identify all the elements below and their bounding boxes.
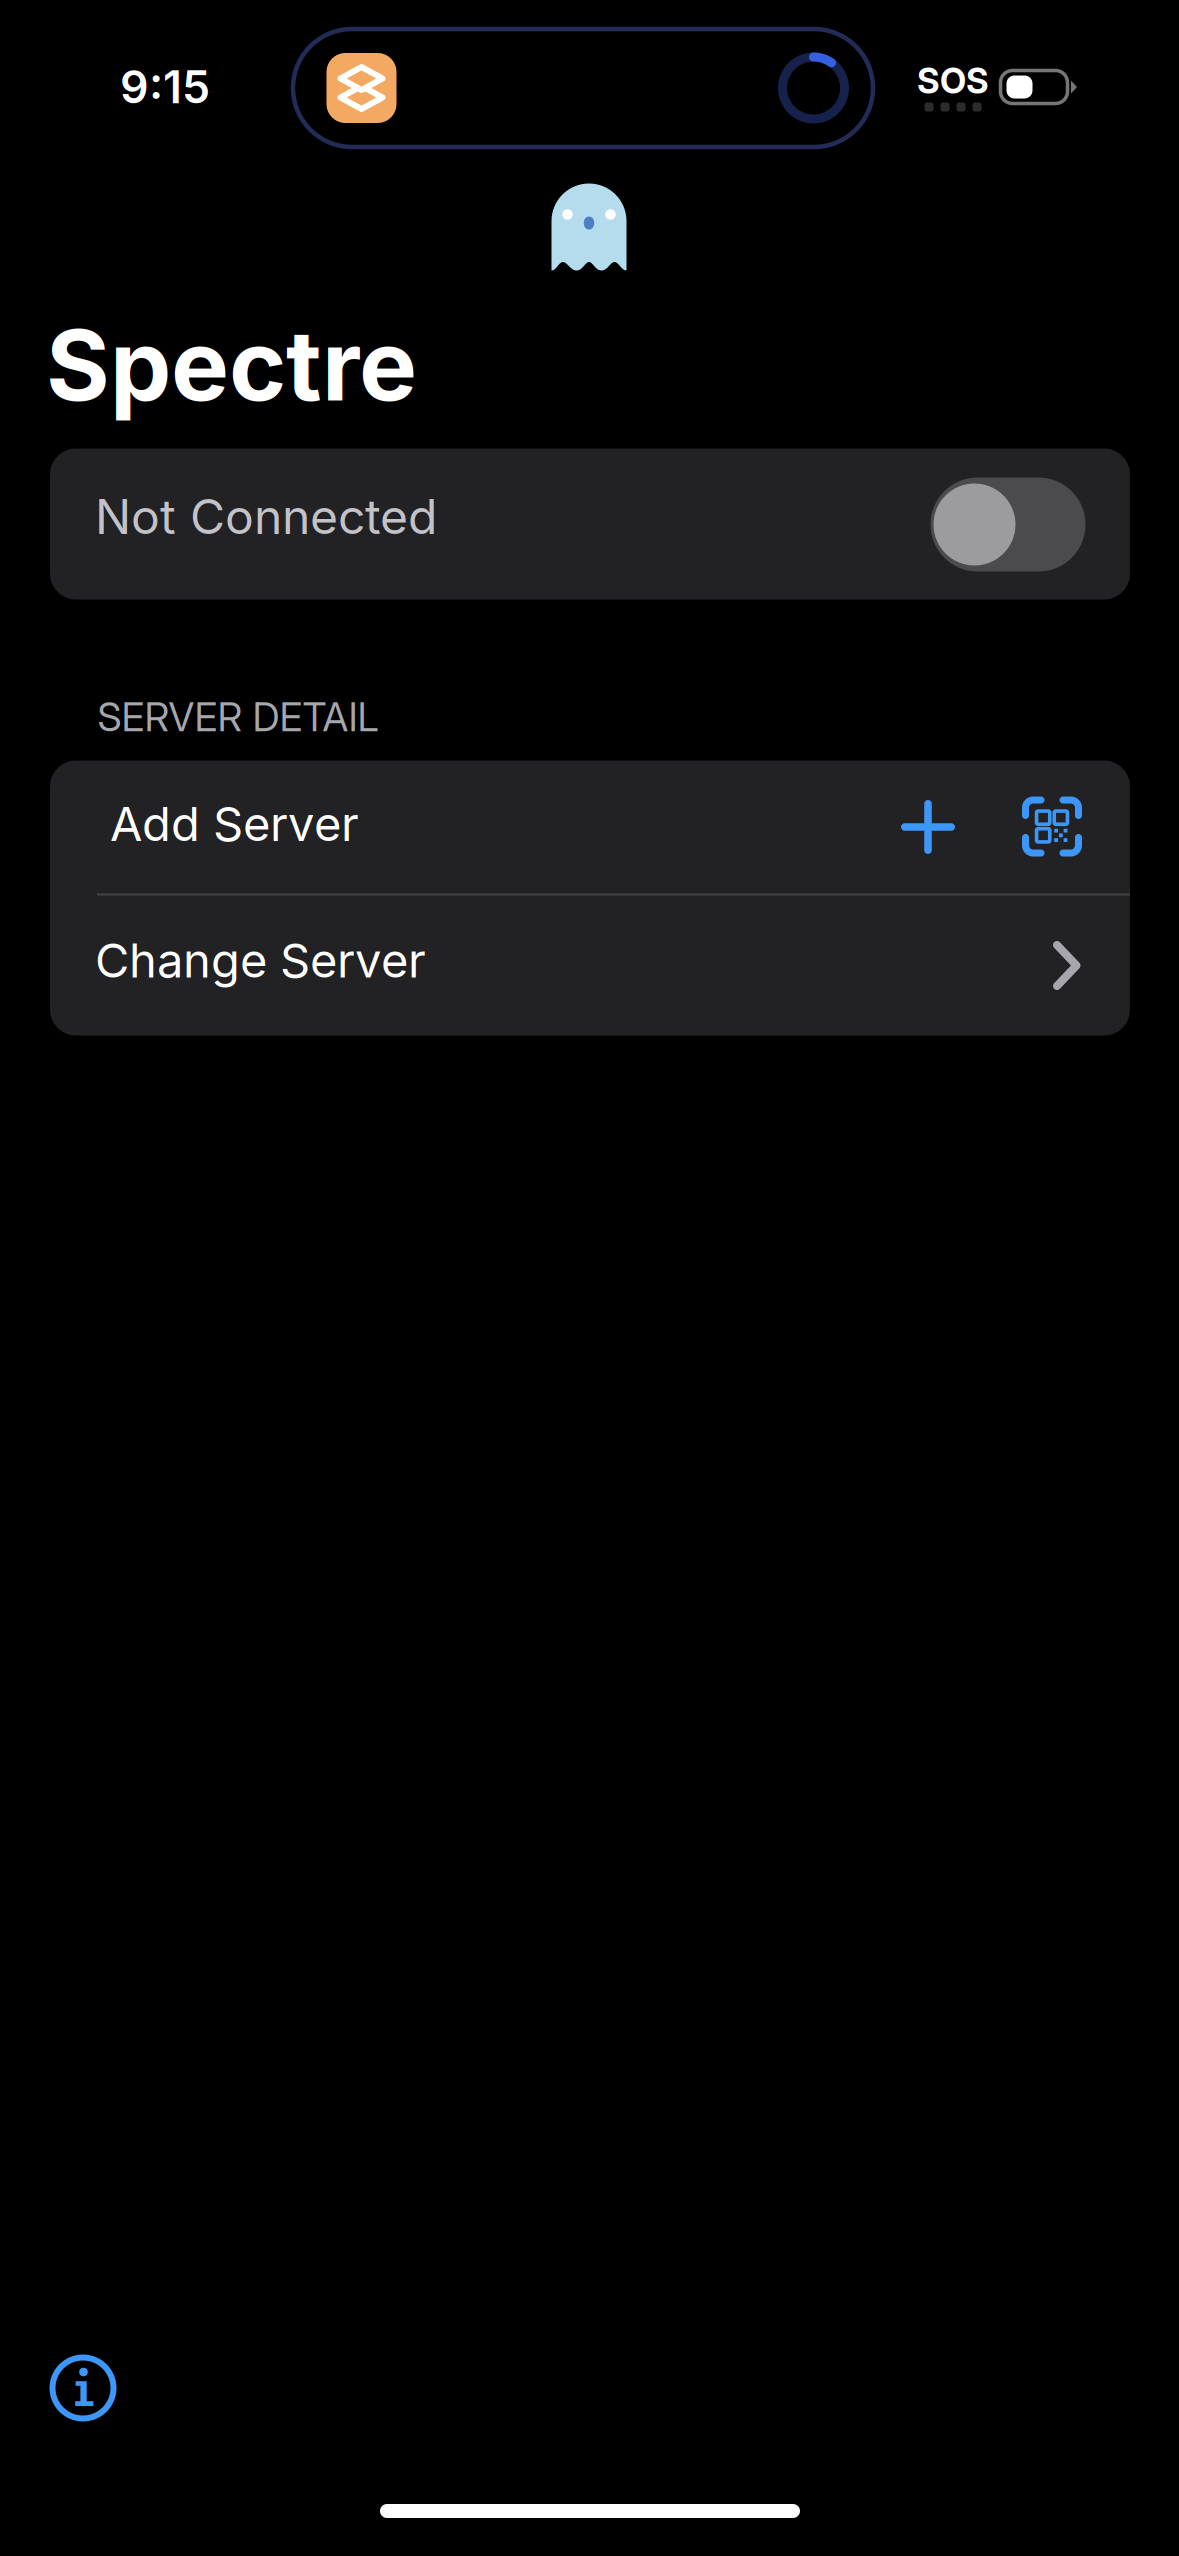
staticText: SOS	[917, 60, 989, 102]
staticText: Spectre	[46, 306, 417, 424]
staticText: 9:15	[120, 60, 210, 114]
button[interactable]: Information	[29, 2334, 137, 2442]
staticText: Not Connected	[95, 487, 437, 546]
button[interactable]: Not Connected	[50, 448, 1130, 599]
staticText: Add Server	[110, 795, 359, 852]
staticText: Change Server	[95, 932, 426, 989]
staticText: SERVER DETAIL	[97, 693, 378, 741]
button[interactable]: Change Server	[50, 895, 1130, 1035]
button[interactable]: Add Server	[50, 760, 1130, 893]
